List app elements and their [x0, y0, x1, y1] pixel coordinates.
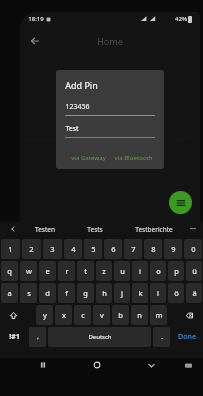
button[interactable]: Testberichte: [134, 225, 174, 234]
staticText: m: [155, 310, 163, 320]
button[interactable]: Hide keyboard: [143, 358, 159, 372]
button[interactable]: Home: [89, 358, 105, 372]
staticText: 7: [131, 244, 136, 254]
button[interactable]: !#1: [1, 327, 27, 347]
staticText: 123456: [65, 102, 90, 112]
staticText: Testberichte: [135, 225, 173, 234]
button[interactable]: 8: [144, 239, 162, 259]
button[interactable]: Testen: [34, 225, 56, 234]
button[interactable]: w: [20, 261, 37, 281]
button[interactable]: k: [132, 283, 148, 303]
button[interactable]: Deutsch: [48, 327, 151, 347]
button[interactable]: n: [131, 305, 148, 325]
button[interactable]: 0: [184, 239, 202, 259]
button[interactable]: via Bluetooth: [112, 152, 155, 164]
button[interactable]: s: [20, 283, 37, 303]
staticText: ···: [190, 224, 196, 234]
button[interactable]: y: [36, 305, 53, 325]
button[interactable]: 5: [84, 239, 102, 259]
staticText: v: [100, 310, 104, 320]
staticText: r: [65, 266, 69, 276]
button[interactable]: 123456: [65, 102, 155, 116]
button[interactable]: x: [55, 305, 72, 325]
staticText: !#1: [9, 332, 20, 342]
button[interactable]: q: [1, 261, 18, 281]
staticText: 8: [151, 244, 156, 254]
staticText: Done: [178, 332, 196, 342]
button[interactable]: f: [58, 283, 75, 303]
button[interactable]: d: [39, 283, 56, 303]
button[interactable]: t: [77, 261, 94, 281]
button[interactable]: g: [77, 283, 94, 303]
staticText: w: [26, 266, 32, 276]
button[interactable]: v: [93, 305, 110, 325]
staticText: h: [102, 288, 107, 298]
button[interactable]: o: [150, 261, 166, 281]
staticText: 9: [171, 244, 176, 254]
button[interactable]: h: [96, 283, 112, 303]
button[interactable]: c: [74, 305, 91, 325]
staticText: No Pins. Add: [26, 135, 62, 143]
button[interactable]: Backspace: [177, 305, 202, 325]
staticText: i: [139, 266, 141, 276]
button[interactable]: j: [114, 283, 130, 303]
button[interactable]: Previous suggestions: [8, 224, 18, 234]
staticText: g: [83, 288, 88, 298]
staticText: Home: [97, 35, 123, 47]
button[interactable]: i: [132, 261, 148, 281]
button[interactable]: 4: [64, 239, 82, 259]
staticText: l: [157, 288, 159, 298]
staticText: Tests: [87, 225, 103, 234]
button[interactable]: Menu: [169, 191, 192, 214]
button[interactable]: ö: [168, 283, 184, 303]
button[interactable]: r: [58, 261, 75, 281]
staticText: Add Pin: [65, 79, 98, 91]
staticText: e: [45, 266, 50, 276]
button[interactable]: l: [150, 283, 166, 303]
button[interactable]: 9: [164, 239, 182, 259]
staticText: q: [7, 266, 12, 276]
staticText: Test: [65, 124, 79, 134]
button[interactable]: Shift: [1, 305, 26, 325]
button[interactable]: e: [39, 261, 56, 281]
staticText: 18:19: [28, 15, 44, 23]
staticText: 6: [111, 244, 116, 254]
staticText: ö: [174, 288, 179, 298]
staticText: n: [137, 310, 142, 320]
button[interactable]: ,: [29, 327, 46, 347]
button[interactable]: z: [96, 261, 112, 281]
button[interactable]: Done: [172, 327, 202, 347]
button[interactable]: Tests: [86, 225, 104, 234]
button[interactable]: ä: [186, 283, 202, 303]
staticText: 0: [191, 244, 196, 254]
button[interactable]: p: [168, 261, 184, 281]
staticText: f: [65, 288, 68, 298]
staticText: ü: [192, 266, 197, 276]
button[interactable]: 6: [104, 239, 122, 259]
staticText: c: [81, 310, 85, 320]
button[interactable]: u: [114, 261, 130, 281]
staticText: Deutsch: [88, 333, 112, 341]
staticText: k: [138, 288, 143, 298]
button[interactable]: 7: [124, 239, 142, 259]
button[interactable]: Back: [24, 30, 46, 52]
button[interactable]: 3: [43, 239, 62, 259]
button[interactable]: 2: [22, 239, 41, 259]
button[interactable]: m: [150, 305, 167, 325]
button[interactable]: a: [1, 283, 18, 303]
button[interactable]: ü: [186, 261, 202, 281]
button[interactable]: via Gateway: [69, 152, 108, 164]
button[interactable]: b: [112, 305, 129, 325]
staticText: 5: [91, 244, 96, 254]
staticText: b: [118, 310, 123, 320]
staticText: p: [174, 266, 179, 276]
button[interactable]: Test: [65, 124, 155, 138]
button[interactable]: .: [153, 327, 170, 347]
staticText: t: [84, 266, 87, 276]
button[interactable]: More options: [188, 224, 198, 234]
button[interactable]: Recent apps: [35, 358, 51, 372]
staticText: Testen: [35, 225, 55, 234]
staticText: 1: [8, 244, 13, 254]
button[interactable]: 1: [1, 239, 20, 259]
staticText: z: [102, 266, 106, 276]
